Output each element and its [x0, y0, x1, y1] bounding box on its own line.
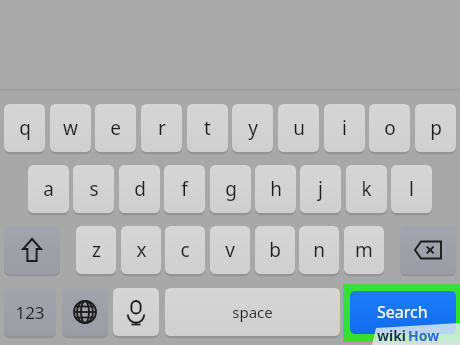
button[interactable]: f	[164, 165, 205, 213]
staticText: 123	[15, 301, 45, 324]
staticText: c	[180, 237, 190, 263]
staticText: i	[342, 115, 347, 141]
staticText: p	[430, 115, 442, 141]
button[interactable]: i	[324, 104, 365, 152]
button[interactable]: e	[95, 104, 136, 152]
button[interactable]: space	[165, 288, 340, 336]
button[interactable]: l	[391, 165, 432, 213]
staticText: b	[269, 237, 281, 263]
button[interactable]: p	[415, 104, 456, 152]
button[interactable]: o	[369, 104, 410, 152]
button[interactable]: g	[210, 165, 251, 213]
button[interactable]: y	[232, 104, 273, 152]
staticText: t	[204, 115, 211, 141]
button[interactable]: Search	[343, 284, 460, 342]
button[interactable]: b	[255, 226, 295, 274]
staticText: o	[384, 115, 396, 141]
staticText: w	[63, 115, 78, 141]
button[interactable]: m	[344, 226, 384, 274]
staticText: wiki	[377, 326, 407, 345]
button[interactable]: t	[187, 104, 228, 152]
staticText: l	[409, 176, 414, 202]
button[interactable]: v	[210, 226, 250, 274]
button[interactable]: n	[299, 226, 339, 274]
button[interactable]: d	[119, 165, 160, 213]
staticText: u	[293, 115, 305, 141]
staticText: v	[225, 237, 235, 263]
button[interactable]: k	[346, 165, 387, 213]
staticText: h	[270, 176, 282, 202]
button[interactable]: q	[4, 104, 45, 152]
button[interactable]: Switch keyboard	[62, 288, 108, 336]
staticText: space	[232, 302, 273, 322]
staticText: Search	[377, 301, 428, 323]
button[interactable]: s	[73, 165, 114, 213]
button[interactable]: Backspace	[400, 226, 456, 274]
staticText: f	[181, 176, 188, 202]
staticText: x	[136, 237, 147, 263]
staticText: How	[408, 326, 440, 345]
button[interactable]: j	[300, 165, 341, 213]
staticText: e	[110, 115, 121, 141]
staticText: k	[361, 176, 372, 202]
staticText: d	[134, 176, 146, 202]
staticText: n	[313, 237, 325, 263]
button[interactable]: x	[121, 226, 161, 274]
button[interactable]: w	[50, 104, 91, 152]
button[interactable]: c	[165, 226, 205, 274]
staticText: y	[248, 115, 258, 141]
button[interactable]: h	[255, 165, 296, 213]
staticText: s	[89, 176, 99, 202]
button[interactable]: Dictate	[113, 288, 159, 336]
button[interactable]: u	[278, 104, 319, 152]
staticText: j	[318, 176, 323, 202]
staticText: m	[355, 237, 373, 263]
staticText: a	[43, 176, 54, 202]
button[interactable]: a	[28, 165, 69, 213]
button[interactable]: Shift	[4, 226, 60, 274]
staticText: z	[92, 237, 101, 263]
staticText: q	[19, 115, 31, 141]
button[interactable]: 123	[4, 288, 56, 336]
button[interactable]: z	[76, 226, 116, 274]
staticText: g	[225, 176, 237, 202]
button[interactable]: r	[141, 104, 182, 152]
staticText: r	[158, 115, 166, 141]
